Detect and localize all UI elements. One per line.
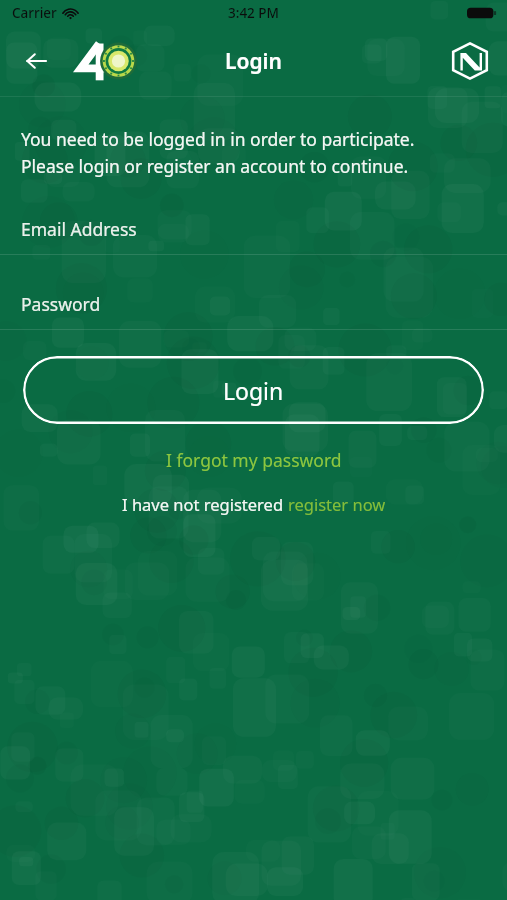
button[interactable]: Brand — [447, 38, 493, 84]
button[interactable]: register now — [288, 493, 386, 515]
button[interactable]: Login — [23, 356, 484, 424]
button[interactable]: Back — [14, 39, 58, 83]
button[interactable]: Password — [0, 279, 507, 330]
staticText: Login — [225, 47, 282, 76]
staticText: Login — [223, 375, 284, 406]
button[interactable]: 40 years logo — [78, 38, 140, 84]
staticText: I have not registered — [122, 493, 288, 515]
staticText: Carrier — [12, 4, 57, 22]
button[interactable]: I forgot my password — [0, 443, 507, 477]
staticText: I forgot my password — [166, 448, 342, 472]
staticText: Password — [21, 292, 101, 316]
button[interactable]: Email Address — [0, 204, 507, 255]
staticText: 3:42 PM — [228, 4, 279, 22]
staticText: You need to be logged in in order to par… — [21, 127, 415, 178]
staticText: register now — [288, 493, 386, 515]
staticText: Email Address — [21, 217, 137, 241]
